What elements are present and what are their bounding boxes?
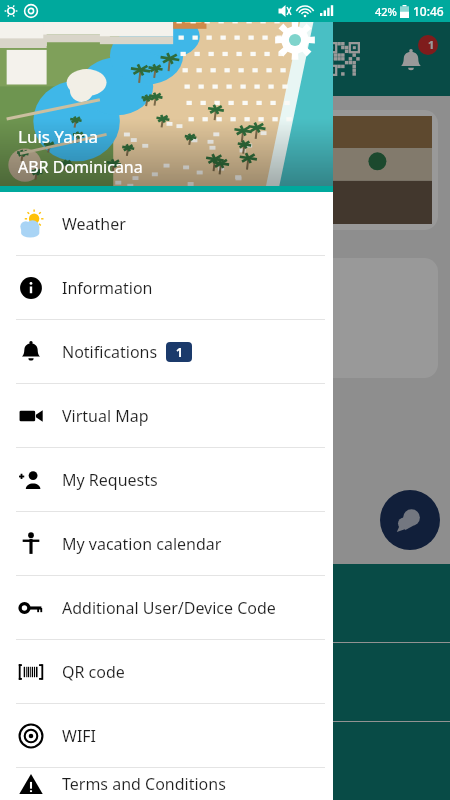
staticText: 1 bbox=[428, 37, 435, 52]
staticText: Virtual Map bbox=[62, 405, 149, 427]
button[interactable]: Notifications bbox=[390, 36, 436, 82]
button[interactable]: Chat bbox=[380, 490, 440, 550]
staticText: 10:46 bbox=[413, 3, 444, 19]
button[interactable] bbox=[231, 258, 438, 378]
staticText: 1 bbox=[176, 344, 183, 360]
button[interactable]: Additional User/Device Code bbox=[0, 576, 333, 639]
button[interactable]: My Photos bbox=[0, 564, 450, 642]
staticText: Additional User/Device Code bbox=[62, 597, 276, 619]
staticText: Luis Yama bbox=[18, 125, 99, 148]
button[interactable]: Notifications bbox=[0, 320, 333, 383]
staticText: My Photos bbox=[188, 613, 262, 632]
button[interactable]: QR code bbox=[0, 640, 333, 703]
staticText: 42% bbox=[375, 4, 397, 19]
staticText: PROMOTION bbox=[68, 308, 164, 328]
button[interactable]: Store bbox=[0, 643, 450, 721]
button[interactable]: Settings bbox=[269, 14, 321, 66]
button[interactable]: My vacation calendar bbox=[0, 512, 333, 575]
button[interactable]: Information bbox=[0, 256, 333, 319]
button[interactable]: Weather bbox=[0, 192, 333, 255]
staticText: Food and bbox=[85, 161, 147, 180]
staticText: Personal Concierge bbox=[158, 771, 293, 790]
button[interactable]: Food and bbox=[12, 110, 219, 230]
button[interactable] bbox=[231, 110, 438, 230]
button[interactable]: Virtual Map bbox=[0, 384, 333, 447]
staticText: Information bbox=[62, 277, 153, 299]
staticText: Store bbox=[207, 692, 244, 711]
staticText: Notifications bbox=[62, 341, 158, 363]
staticText: My Requests bbox=[62, 469, 158, 491]
staticText: My vacation calendar bbox=[62, 533, 222, 555]
button[interactable]: WIFI bbox=[0, 704, 333, 767]
button[interactable]: Personal Concierge bbox=[0, 722, 450, 800]
staticText: QR code bbox=[62, 661, 125, 683]
staticText: Weather bbox=[62, 213, 126, 235]
button[interactable]: QR code bbox=[322, 38, 364, 80]
button[interactable]: My Requests bbox=[0, 448, 333, 511]
staticText: Terms and Conditions bbox=[62, 773, 226, 795]
staticText: ABR Dominicana bbox=[18, 156, 143, 178]
staticText: WIFI bbox=[62, 725, 97, 747]
button[interactable]: PROMOTION bbox=[12, 258, 219, 378]
button[interactable]: Terms and Conditions bbox=[0, 768, 333, 800]
